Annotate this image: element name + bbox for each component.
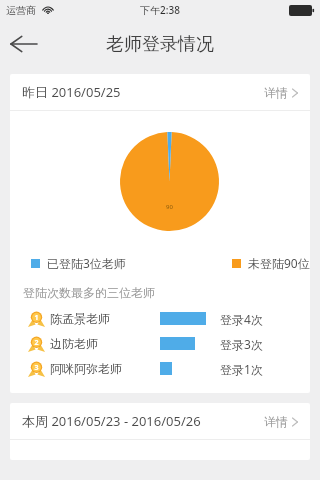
staticText: 登录1次 xyxy=(220,361,263,377)
staticText: 登录3次 xyxy=(220,336,263,352)
button[interactable]: 3 xyxy=(10,356,310,381)
staticText: 陈孟景老师 xyxy=(50,311,110,326)
staticText: 边防老师 xyxy=(50,336,98,351)
staticText: 未登陆90位 xyxy=(248,255,310,271)
staticText: 详情 xyxy=(264,414,288,429)
staticText: 阿咪阿弥老师 xyxy=(50,361,122,376)
staticText: 已登陆3位老师 xyxy=(47,255,126,271)
button[interactable]: 1 xyxy=(10,306,310,331)
button[interactable]: Back xyxy=(0,20,48,68)
staticText: 90 xyxy=(166,203,173,211)
staticText: 本周 2016/05/23 - 2016/05/26 xyxy=(22,412,201,430)
button[interactable]: 2 xyxy=(10,331,310,356)
staticText: 运营商 xyxy=(6,4,36,17)
staticText: 登录4次 xyxy=(220,311,263,327)
button[interactable]: 本周 2016/05/23 - 2016/05/26 xyxy=(10,403,310,439)
staticText: 登陆次数最多的三位老师 xyxy=(23,285,155,300)
staticText: 1 xyxy=(34,313,39,323)
staticText: 详情 xyxy=(264,85,288,100)
staticText: 老师登录情况 xyxy=(106,33,214,56)
staticText: 3 xyxy=(34,363,39,373)
staticText: 昨日 2016/05/25 xyxy=(22,83,121,101)
staticText: 下午2:38 xyxy=(140,3,180,17)
staticText: 2 xyxy=(34,338,39,348)
button[interactable]: 昨日 2016/05/25 xyxy=(10,74,310,110)
